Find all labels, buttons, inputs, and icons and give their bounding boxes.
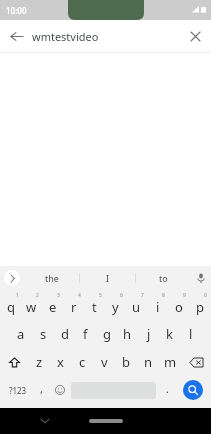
staticText: 5	[99, 292, 102, 299]
button[interactable]: Home	[89, 419, 123, 423]
button[interactable]: 0	[189, 290, 210, 319]
staticText: w	[26, 298, 37, 316]
staticText: ?123	[9, 385, 27, 396]
button[interactable]: v	[93, 348, 115, 376]
staticText: p	[196, 298, 204, 316]
button[interactable]: m	[159, 348, 181, 376]
staticText: t	[92, 298, 97, 316]
staticText: d	[61, 325, 69, 343]
staticText: q	[7, 298, 15, 316]
button[interactable]: l	[180, 319, 201, 348]
staticText: 3	[57, 292, 60, 299]
staticText: m	[164, 353, 177, 371]
staticText: j	[147, 325, 151, 343]
button[interactable]: h	[117, 319, 138, 348]
staticText: z	[36, 353, 43, 371]
button[interactable]: 6	[105, 290, 126, 319]
staticText: k	[166, 325, 173, 343]
staticText: e	[49, 298, 57, 316]
button[interactable]: j	[138, 319, 159, 348]
button[interactable]: Back	[0, 20, 32, 52]
staticText: 4	[78, 292, 81, 299]
staticText: b	[122, 353, 130, 371]
staticText: s	[40, 325, 47, 343]
button[interactable]: g	[96, 319, 117, 348]
button[interactable]: Search	[177, 376, 209, 404]
staticText: f	[83, 325, 88, 343]
button[interactable]: f	[75, 319, 96, 348]
button[interactable]: Hide keyboard	[36, 412, 54, 430]
staticText: I	[106, 272, 110, 284]
staticText: u	[132, 298, 141, 316]
button[interactable]: to	[136, 266, 191, 290]
button[interactable]: b	[115, 348, 137, 376]
button[interactable]: Backspace	[181, 348, 211, 376]
button[interactable]: Shift	[0, 348, 29, 376]
button[interactable]: More suggestions	[4, 270, 20, 286]
staticText: a	[17, 325, 25, 343]
button[interactable]: ,	[33, 376, 50, 404]
button[interactable]: 9	[168, 290, 189, 319]
staticText: r	[71, 298, 77, 316]
staticText: 2	[36, 292, 39, 299]
button[interactable]: 1	[1, 290, 21, 319]
staticText: 9	[183, 292, 186, 299]
staticText: the	[45, 272, 59, 284]
staticText: 6	[120, 292, 123, 299]
staticText: 8	[162, 292, 165, 299]
staticText: 1	[16, 292, 19, 299]
staticText: n	[144, 353, 153, 371]
button[interactable]: 5	[84, 290, 105, 319]
staticText: v	[101, 353, 108, 371]
button[interactable]: Emoji	[50, 376, 69, 404]
button[interactable]: Voice input	[191, 266, 211, 290]
button[interactable]: 3	[42, 290, 63, 319]
button[interactable]: the	[24, 266, 79, 290]
button[interactable]: 8	[147, 290, 168, 319]
staticText: ,	[40, 381, 43, 396]
staticText: o	[175, 298, 183, 316]
button[interactable]: d	[54, 319, 75, 348]
button[interactable]: 7	[126, 290, 147, 319]
staticText: g	[103, 325, 111, 343]
staticText: 7	[141, 292, 144, 299]
staticText: wmtestvideo	[32, 29, 99, 44]
button[interactable]: wmtestvideo	[32, 20, 179, 52]
staticText: i	[156, 298, 160, 316]
staticText: x	[57, 353, 64, 371]
button[interactable]: .	[158, 376, 177, 404]
button[interactable]: ?123	[2, 376, 33, 404]
button[interactable]: x	[50, 348, 71, 376]
staticText: to	[159, 272, 168, 284]
button[interactable]: c	[71, 348, 93, 376]
staticText: 10:00	[6, 5, 27, 16]
button[interactable]: k	[159, 319, 180, 348]
staticText: l	[189, 325, 193, 343]
staticText: h	[123, 325, 132, 343]
button[interactable]: z	[29, 348, 50, 376]
button[interactable]: Clear	[179, 20, 211, 52]
button[interactable]: n	[137, 348, 159, 376]
button[interactable]: s	[32, 319, 54, 348]
staticText: y	[112, 298, 119, 316]
button[interactable]: 4	[63, 290, 84, 319]
button[interactable]: a	[10, 319, 32, 348]
staticText: 0	[204, 292, 207, 299]
staticText: .	[166, 381, 169, 396]
button[interactable]: 2	[21, 290, 42, 319]
button[interactable]: I	[80, 266, 135, 290]
staticText: c	[79, 353, 86, 371]
